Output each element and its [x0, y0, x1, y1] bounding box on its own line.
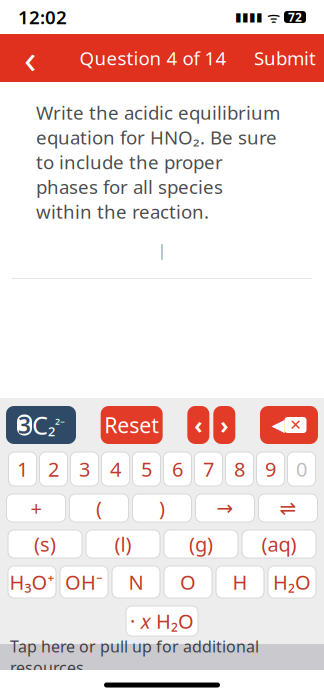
button[interactable]: H₂O: [268, 566, 316, 598]
staticText: 0: [296, 456, 307, 482]
button[interactable]: 1: [8, 452, 36, 486]
button[interactable]: 2: [39, 452, 67, 486]
staticText: ‹: [194, 410, 202, 440]
staticText: H₂O: [273, 569, 311, 595]
button[interactable]: O: [164, 566, 212, 598]
staticText: ᯤ: [263, 7, 284, 27]
staticText: →: [216, 497, 233, 519]
staticText: ›: [220, 410, 228, 440]
staticText: ⇌: [279, 497, 296, 519]
staticText: 3: [18, 410, 31, 440]
staticText: Question 4 of 14: [79, 46, 226, 70]
staticText: (g): [189, 531, 213, 557]
staticText: OH⁻: [65, 569, 103, 595]
staticText: (l): [114, 531, 131, 557]
staticText: Submit: [254, 46, 316, 70]
button[interactable]: Back: [8, 36, 52, 80]
button[interactable]: 8: [225, 452, 253, 486]
button[interactable]: ⇌: [258, 494, 317, 522]
staticText: 2: [48, 456, 59, 482]
staticText: 12:02: [18, 5, 67, 29]
button[interactable]: +: [6, 494, 65, 522]
staticText: C: [32, 408, 48, 442]
button[interactable]: Submit: [254, 36, 316, 80]
button[interactable]: Tap here or pull up for additional resou…: [0, 644, 324, 670]
button[interactable]: (g): [164, 530, 238, 558]
button[interactable]: 9: [256, 452, 284, 486]
staticText: ²⁻: [55, 415, 65, 435]
staticText: (s): [34, 531, 56, 557]
button[interactable]: 6: [163, 452, 191, 486]
staticText: 1: [17, 456, 28, 482]
staticText: ): [159, 495, 165, 521]
staticText: N: [128, 569, 143, 595]
staticText: ▮▮▮▮: [235, 10, 263, 24]
staticText: 7: [203, 456, 214, 482]
staticText: H₃O⁺: [9, 569, 54, 595]
staticText: Reset: [104, 411, 159, 439]
button[interactable]: (: [69, 494, 128, 522]
button[interactable]: 3: [70, 452, 98, 486]
staticText: 3: [79, 456, 90, 482]
button[interactable]: H: [216, 566, 264, 598]
button[interactable]: Formula preview: [6, 406, 76, 444]
button[interactable]: (l): [86, 530, 160, 558]
staticText: H: [232, 569, 247, 595]
button[interactable]: H₃O⁺: [8, 566, 56, 598]
button[interactable]: OH⁻: [60, 566, 108, 598]
button[interactable]: Move cursor left: [187, 406, 209, 444]
button[interactable]: Move cursor right: [213, 406, 235, 444]
staticText: ₂: [48, 411, 55, 439]
staticText: ◀: [271, 415, 284, 435]
button[interactable]: 5: [132, 452, 160, 486]
staticText: ‹: [24, 31, 36, 84]
staticText: Write the acidic equilibrium equation fo…: [36, 100, 280, 224]
staticText: (aq): [261, 531, 296, 557]
button[interactable]: (s): [8, 530, 82, 558]
button[interactable]: · 𝑥 H₂O: [126, 606, 198, 636]
staticText: 8: [234, 456, 245, 482]
button[interactable]: (aq): [242, 530, 316, 558]
staticText: ✕: [289, 417, 301, 433]
button[interactable]: 4: [101, 452, 129, 486]
button[interactable]: Delete: [260, 406, 318, 444]
staticText: 9: [265, 456, 276, 482]
button[interactable]: 7: [194, 452, 222, 486]
staticText: · 𝑥 H₂O: [130, 608, 194, 634]
staticText: 4: [110, 456, 121, 482]
staticText: Tap here or pull up for additional resou…: [10, 636, 259, 678]
staticText: 6: [172, 456, 183, 482]
staticText: (: [96, 495, 102, 521]
button[interactable]: N: [112, 566, 160, 598]
staticText: O: [180, 569, 196, 595]
button[interactable]: ): [132, 494, 191, 522]
staticText: 5: [141, 456, 152, 482]
staticText: +: [30, 495, 41, 521]
button[interactable]: Reset: [101, 406, 163, 444]
staticText: 72: [288, 9, 302, 25]
button[interactable]: 0: [287, 452, 315, 486]
button[interactable]: →: [195, 494, 254, 522]
